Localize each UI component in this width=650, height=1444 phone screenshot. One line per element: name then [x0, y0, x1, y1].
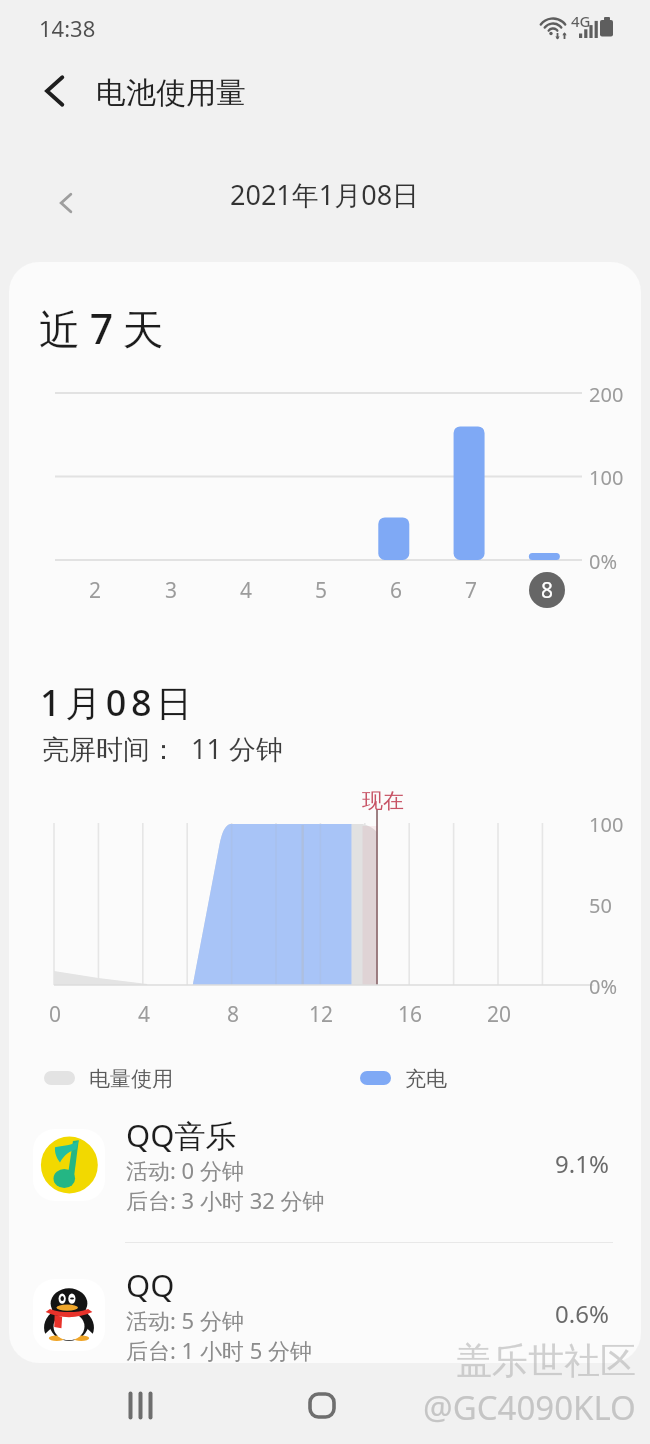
staticText: 3 [165, 576, 178, 605]
staticText: 4 [240, 576, 253, 605]
button[interactable]: Home [290, 1383, 354, 1427]
staticText: 1月08日 [40, 678, 197, 727]
staticText: 近 7 天 [39, 300, 164, 356]
staticText: 后台: 3 小时 32 分钟 [126, 1185, 325, 1215]
staticText: 20 [487, 1000, 512, 1029]
staticText: @GC4090KLO [423, 1385, 636, 1430]
staticText: 亮屏时间： 11 分钟 [42, 730, 283, 767]
staticText: 5 [315, 576, 328, 605]
staticText: 100 [589, 811, 624, 838]
staticText: 2 [89, 576, 102, 605]
staticText: QQ [126, 1264, 175, 1306]
button[interactable]: Back [22, 59, 86, 123]
staticText: 盖乐世社区 [456, 1338, 636, 1383]
staticText: 电池使用量 [96, 74, 246, 112]
staticText: 0.6% [555, 1297, 609, 1330]
staticText: 9.1% [555, 1147, 609, 1180]
button[interactable]: QQ [9, 1261, 641, 1363]
staticText: 50 [589, 892, 612, 919]
staticText: 16 [398, 1000, 423, 1029]
staticText: 4G [571, 11, 591, 31]
staticText: 现在 [362, 788, 404, 814]
staticText: 充电 [405, 1066, 447, 1092]
staticText: 活动: 5 分钟 [126, 1305, 244, 1335]
staticText: 7 [465, 576, 478, 605]
staticText: 电量使用 [89, 1066, 173, 1092]
staticText: 8 [541, 576, 554, 605]
staticText: 0% [589, 973, 618, 1000]
staticText: 4 [138, 1000, 151, 1029]
staticText: 14:38 [39, 13, 96, 43]
button[interactable]: Previous day [42, 179, 90, 227]
staticText: 100 [589, 464, 624, 491]
staticText: 2021年1月08日 [230, 176, 420, 213]
staticText: QQ音乐 [126, 1114, 237, 1156]
staticText: 活动: 0 分钟 [126, 1155, 244, 1185]
staticText: 后台: 1 小时 5 分钟 [126, 1335, 312, 1363]
staticText: 0 [49, 1000, 62, 1029]
button[interactable]: QQ音乐 [9, 1111, 641, 1263]
staticText: 200 [589, 381, 624, 408]
staticText: 0% [589, 548, 618, 575]
staticText: 8 [227, 1000, 240, 1029]
staticText: 6 [390, 576, 403, 605]
button[interactable]: Recents [110, 1383, 174, 1427]
staticText: 12 [309, 1000, 334, 1029]
